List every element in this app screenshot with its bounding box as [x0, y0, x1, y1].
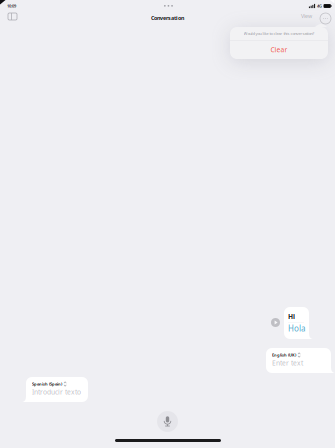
staticText: 10:09 [7, 3, 16, 9]
staticText: Introducir texto [32, 388, 81, 396]
button[interactable]: View [300, 12, 313, 20]
staticText: Enter text [272, 359, 303, 367]
staticText: 4G [317, 3, 322, 9]
button[interactable]: Record [157, 411, 178, 432]
staticText: View [301, 12, 312, 20]
staticText: Hi [288, 312, 295, 321]
button[interactable]: Spanish (Spain) [26, 377, 88, 402]
button[interactable]: English (UK) [266, 348, 331, 373]
button[interactable]: Clear [230, 40, 328, 59]
staticText: Would you like to clear this conversatio… [243, 31, 314, 36]
button[interactable]: Play translation [271, 318, 280, 327]
button[interactable]: Show Sidebar [4, 9, 21, 24]
button[interactable]: More options [320, 13, 331, 24]
staticText: Clear [270, 45, 287, 54]
staticText: Conversation [151, 14, 184, 22]
staticText: English (UK) [272, 352, 296, 358]
staticText: Spanish (Spain) [32, 381, 62, 387]
staticText: Hola [288, 323, 305, 334]
